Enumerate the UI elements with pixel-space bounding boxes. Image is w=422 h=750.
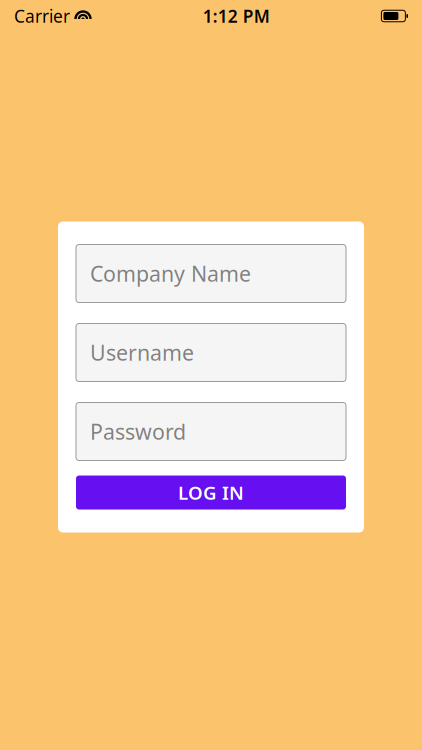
staticText: LOG IN <box>178 480 244 505</box>
button[interactable]: Password <box>76 402 346 460</box>
staticText: 1:12 PM <box>203 4 270 27</box>
button[interactable]: Username <box>76 323 346 381</box>
staticText: Password <box>90 417 186 446</box>
staticText: Carrier <box>14 4 70 27</box>
button[interactable]: Company Name <box>76 244 346 302</box>
button[interactable]: LOG IN <box>76 475 346 509</box>
staticText: Company Name <box>90 259 251 288</box>
staticText: Username <box>90 338 194 367</box>
